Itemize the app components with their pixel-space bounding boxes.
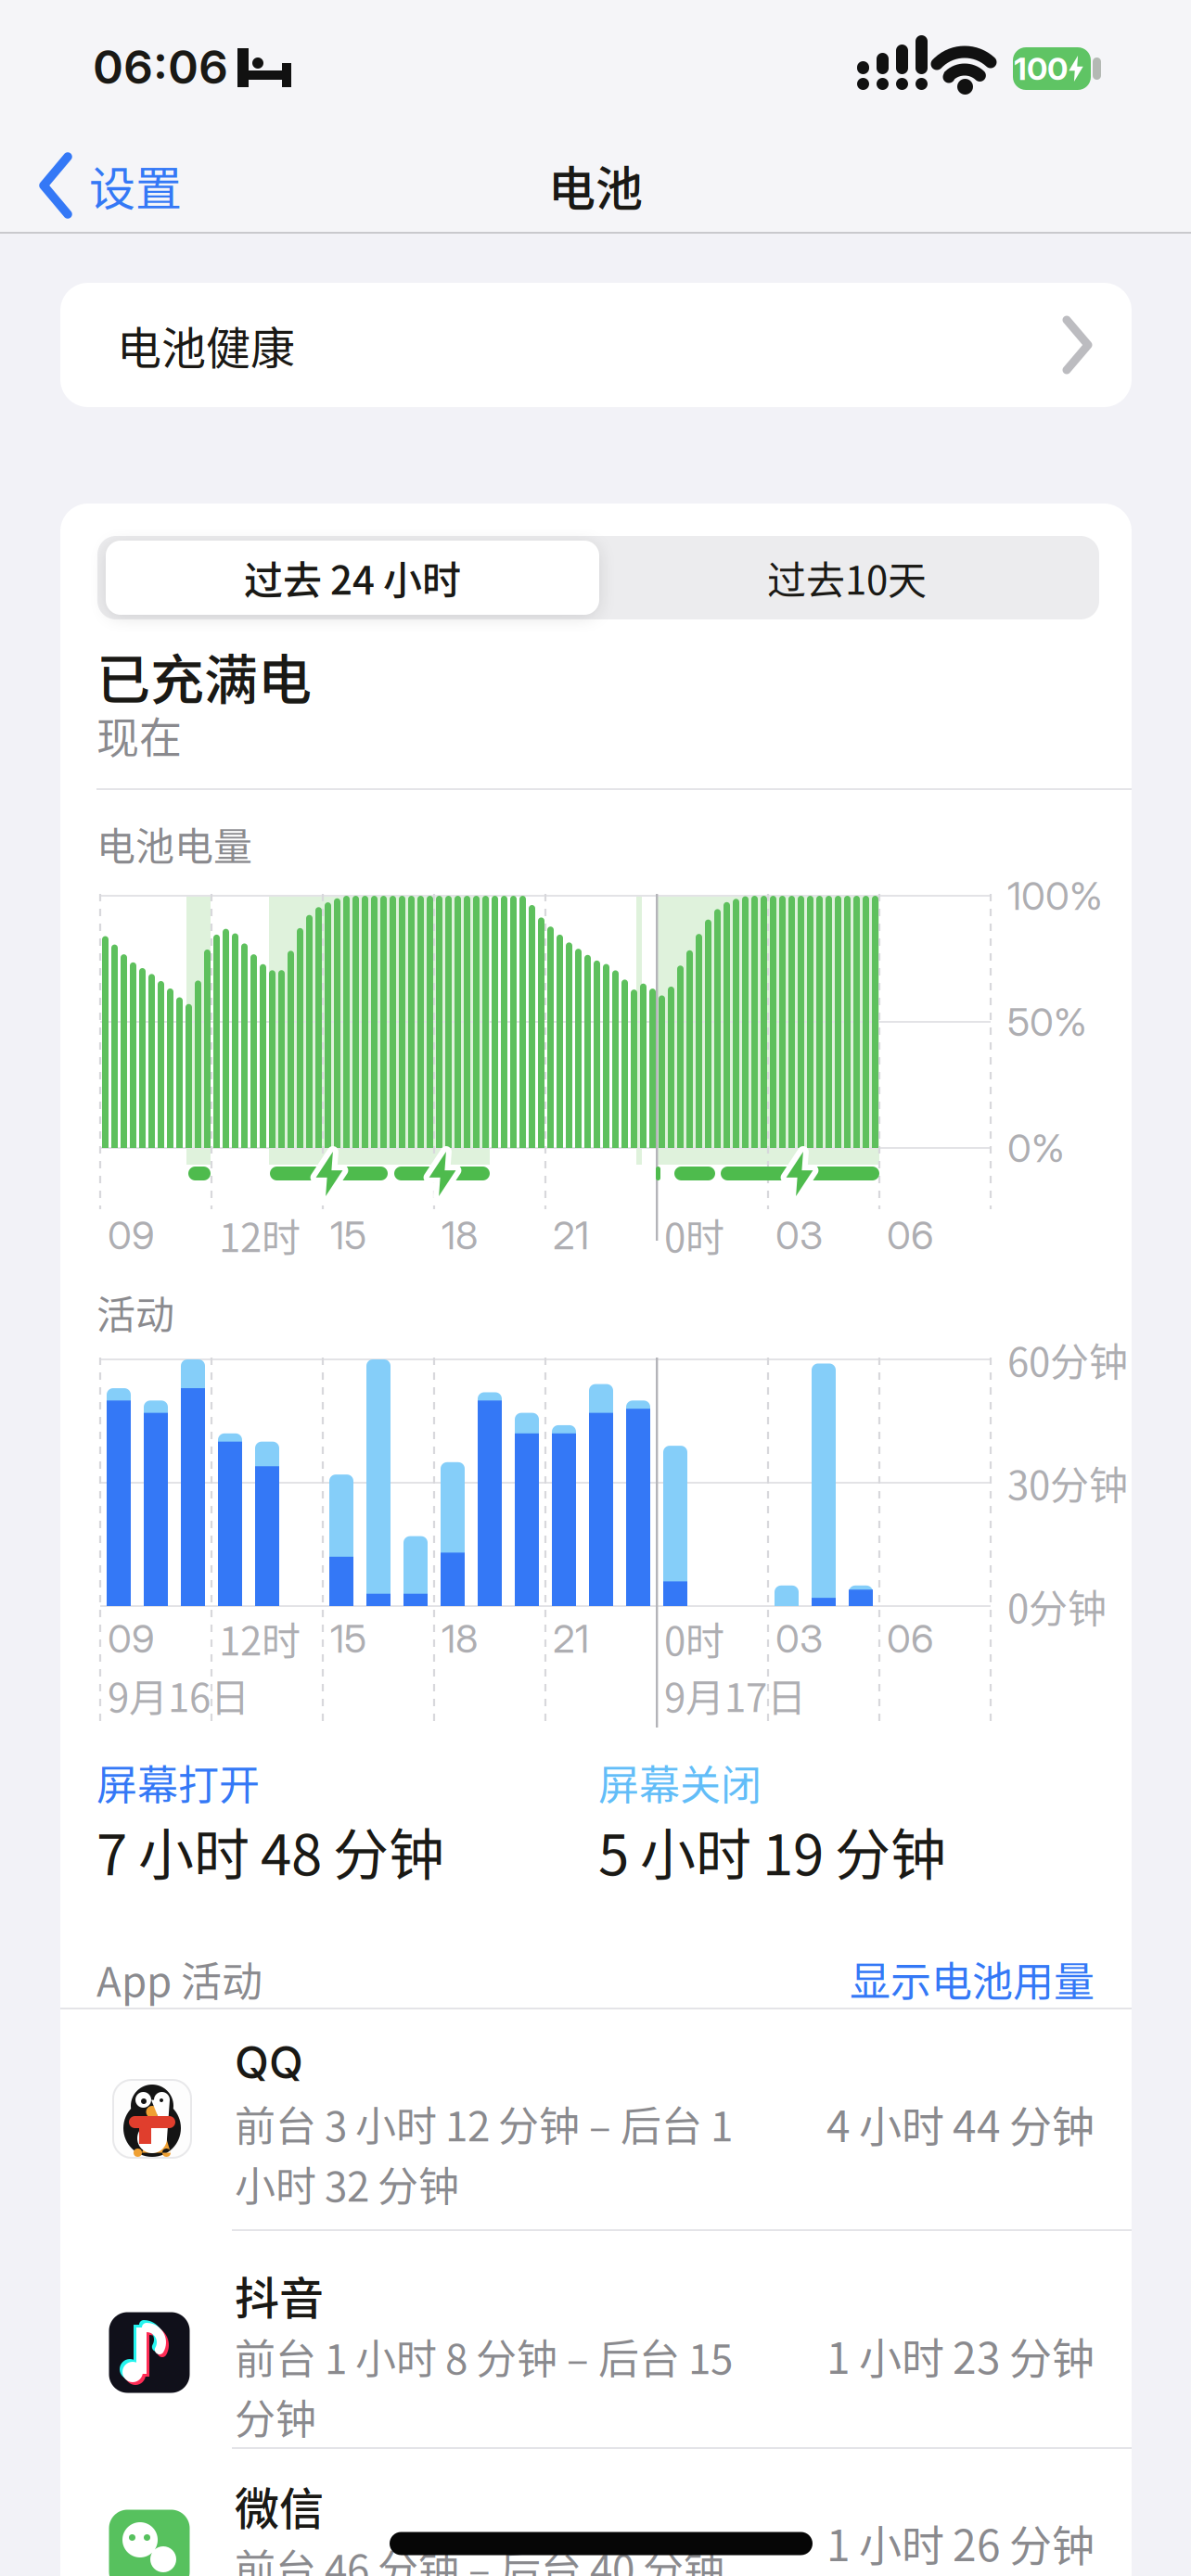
- staticText: 30分钟: [1007, 1455, 1128, 1511]
- staticText: 分钟: [235, 2387, 316, 2446]
- staticText: 0时: [664, 1610, 724, 1667]
- staticText: 4 小时 44 分钟: [826, 2093, 1095, 2154]
- staticText: 03: [775, 1615, 823, 1662]
- staticText: 1 小时 23 分钟: [826, 2324, 1095, 2386]
- staticText: 过去10天: [767, 550, 927, 606]
- staticText: 电池: [548, 151, 643, 220]
- staticText: 前台 46 分钟 – 后台 40 分钟: [235, 2537, 724, 2576]
- staticText: 小时 32 分钟: [235, 2154, 459, 2213]
- staticText: 03: [775, 1212, 823, 1259]
- staticText: 5 小时 19 分钟: [598, 1811, 946, 1891]
- staticText: 屏幕关闭: [598, 1753, 762, 1812]
- staticText: 活动: [96, 1284, 174, 1340]
- staticText: 12时: [219, 1610, 301, 1667]
- button[interactable]: 设置: [0, 0, 1191, 2576]
- staticText: 100: [1014, 50, 1068, 88]
- staticText: 屏幕打开: [96, 1753, 260, 1812]
- staticText: 21: [553, 1615, 589, 1662]
- staticText: 60分钟: [1007, 1331, 1128, 1388]
- staticText: 18: [442, 1615, 478, 1662]
- button[interactable]: 显示电池用量: [0, 0, 1191, 2576]
- button[interactable]: QQ: [0, 0, 1191, 2576]
- staticText: 设置: [89, 152, 182, 219]
- staticText: 电池健康: [117, 313, 295, 377]
- staticText: 微信: [235, 2473, 324, 2538]
- staticText: 0分钟: [1007, 1578, 1107, 1634]
- staticText: 15: [330, 1212, 366, 1259]
- staticText: 06:06: [93, 39, 228, 95]
- staticText: 18: [442, 1212, 478, 1259]
- staticText: QQ: [235, 2035, 303, 2089]
- staticText: 过去 24 小时: [244, 550, 461, 606]
- button[interactable]: 过去 24 小时: [0, 0, 1191, 2576]
- staticText: 09: [108, 1615, 155, 1662]
- staticText: App 活动: [96, 1949, 263, 2008]
- staticText: 7 小时 48 分钟: [96, 1811, 444, 1891]
- staticText: 9月17日: [664, 1667, 806, 1723]
- staticText: 已充满电: [96, 637, 312, 715]
- button[interactable]: 过去10天: [0, 0, 1191, 2576]
- button[interactable]: 电池健康: [0, 0, 1191, 2576]
- staticText: 50%: [1007, 998, 1087, 1045]
- staticText: 抖音: [235, 2263, 324, 2327]
- button[interactable]: 抖音: [0, 0, 1191, 2576]
- staticText: 100%: [1007, 872, 1103, 919]
- staticText: 12时: [219, 1207, 301, 1263]
- staticText: 15: [330, 1615, 366, 1662]
- staticText: 显示电池用量: [850, 1949, 1095, 2008]
- staticText: 06: [887, 1615, 934, 1662]
- staticText: 前台 1 小时 8 分钟 – 后台 15: [235, 2327, 733, 2386]
- staticText: 9月16日: [108, 1667, 250, 1723]
- staticText: 电池电量: [96, 816, 252, 872]
- staticText: 前台 3 小时 12 分钟 – 后台 1: [235, 2094, 733, 2153]
- staticText: 1 小时 26 分钟: [826, 2512, 1095, 2573]
- staticText: 0时: [664, 1207, 724, 1263]
- staticText: 06: [887, 1212, 934, 1259]
- button[interactable]: 微信: [0, 0, 1191, 2576]
- staticText: 09: [108, 1212, 155, 1259]
- staticText: 现在: [96, 704, 182, 765]
- staticText: 0%: [1007, 1124, 1065, 1172]
- staticText: 21: [553, 1212, 589, 1259]
